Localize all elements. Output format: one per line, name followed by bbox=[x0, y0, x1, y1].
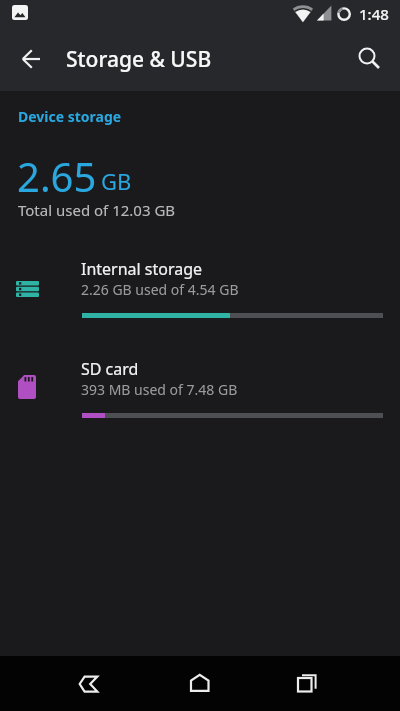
button[interactable] bbox=[277, 657, 341, 711]
staticText: 393 MB used of 7.48 GB bbox=[81, 380, 238, 399]
button[interactable] bbox=[8, 44, 52, 88]
button[interactable] bbox=[346, 40, 394, 84]
staticText: 1:48 bbox=[359, 4, 389, 24]
staticText: GB bbox=[101, 166, 132, 196]
button[interactable]: Internal storage bbox=[0, 247, 400, 347]
staticText: 2.65 bbox=[17, 149, 97, 203]
button[interactable] bbox=[168, 657, 232, 711]
staticText: Total used of 12.03 GB bbox=[18, 200, 176, 220]
staticText: SD card bbox=[81, 358, 139, 380]
staticText: 2.26 GB used of 4.54 GB bbox=[81, 280, 239, 299]
staticText: Storage & USB bbox=[66, 45, 212, 74]
staticText: Device storage bbox=[18, 107, 122, 126]
button[interactable] bbox=[57, 657, 121, 711]
staticText: Internal storage bbox=[81, 258, 203, 280]
button[interactable]: SD card bbox=[0, 347, 400, 447]
